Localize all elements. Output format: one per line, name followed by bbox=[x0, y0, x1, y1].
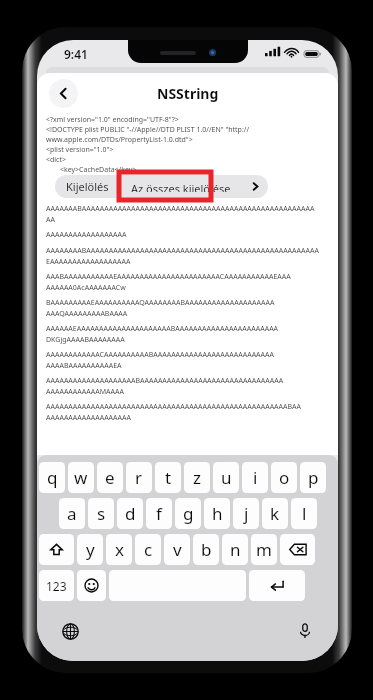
staticText: AAAAAAABAAAAAAAAAAAAAAAAAAAAAAAAAAAAAAAA… bbox=[46, 204, 315, 224]
button[interactable]: Change keyboard bbox=[57, 618, 83, 644]
staticText: Az összes kijelölése bbox=[131, 181, 231, 192]
button[interactable]: Az összes kijelölése bbox=[120, 175, 242, 198]
staticText: e bbox=[105, 466, 115, 489]
staticText: s bbox=[97, 502, 106, 525]
staticText: g bbox=[183, 502, 194, 525]
staticText: <plist version="1.0"> bbox=[46, 145, 114, 155]
staticText: NSString bbox=[157, 84, 219, 103]
button[interactable]: Return bbox=[249, 570, 305, 601]
staticText: p bbox=[308, 466, 319, 489]
staticText: j bbox=[244, 502, 249, 525]
button[interactable]: k bbox=[262, 498, 288, 529]
staticText: w bbox=[74, 466, 88, 489]
button[interactable]: Back bbox=[49, 79, 78, 108]
staticText: y bbox=[86, 538, 95, 561]
staticText: <?xml version="1.0" encoding="UTF-8"?> bbox=[46, 115, 179, 125]
button[interactable]: More bbox=[242, 175, 268, 198]
button[interactable]: Dictation bbox=[292, 618, 318, 644]
staticText: <data> bbox=[60, 175, 83, 185]
button[interactable]: g bbox=[175, 498, 201, 529]
staticText: AAAAAAAAAAAACAAAAAAAAAABAAAAAAAAAAAAAAAA… bbox=[46, 350, 275, 370]
button[interactable]: f bbox=[146, 498, 172, 529]
staticText: l bbox=[302, 502, 307, 525]
staticText: AAAAAAAAAAAAAAAAAA bbox=[46, 230, 127, 240]
button[interactable]: Backspace bbox=[280, 534, 315, 565]
button[interactable]: i bbox=[242, 462, 268, 493]
staticText: AAAAAAAABAAAAAAAAAAAAAAAAAAAAAAAAAAAAAAA… bbox=[46, 246, 319, 266]
staticText: r bbox=[135, 466, 143, 489]
button[interactable]: q bbox=[39, 462, 65, 493]
button[interactable]: w bbox=[68, 462, 94, 493]
button[interactable]: l bbox=[291, 498, 317, 529]
button[interactable]: p bbox=[300, 462, 326, 493]
staticText: h bbox=[212, 502, 223, 525]
staticText: <!DOCTYPE plist PUBLIC "-//Apple//DTD PL… bbox=[46, 125, 250, 135]
button[interactable]: o bbox=[271, 462, 297, 493]
staticText: AAAAAAEAAAAAAAAAAAAAAAAAAAAABAAAAAAAAAAA… bbox=[46, 324, 279, 344]
staticText: AAAAAAAAAAAAAAAAAAAAAAAAAAAAAAAAAAAAAAAA… bbox=[46, 402, 302, 422]
staticText: <key>CacheData</key> bbox=[60, 165, 137, 175]
button[interactable]: t bbox=[155, 462, 181, 493]
button[interactable]: a bbox=[59, 498, 85, 529]
button[interactable]: c bbox=[135, 534, 161, 565]
button[interactable]: Shift bbox=[39, 534, 74, 565]
staticText: BAAAAAAAAAEAAAAAAAAAAQAAAAAAAABAAAAAAAAA… bbox=[46, 298, 275, 318]
staticText: z bbox=[193, 466, 201, 489]
staticText: x bbox=[115, 538, 124, 561]
staticText: n bbox=[230, 538, 241, 561]
button[interactable]: u bbox=[213, 462, 239, 493]
button[interactable]: 123 bbox=[39, 570, 74, 601]
staticText: 9:41 bbox=[64, 46, 88, 62]
staticText: f bbox=[156, 502, 162, 525]
button[interactable]: j bbox=[233, 498, 259, 529]
button[interactable]: y bbox=[77, 534, 103, 565]
staticText: u bbox=[221, 466, 232, 489]
staticText: AAABAAAAAAAAAAAEAAAAAAAAAAAAAAAAAAAAAAAC… bbox=[46, 272, 291, 292]
staticText: i bbox=[253, 466, 258, 489]
button[interactable]: Emoji bbox=[77, 570, 106, 601]
staticText: o bbox=[279, 466, 290, 489]
staticText: v bbox=[173, 538, 182, 561]
staticText: <dict> bbox=[46, 155, 67, 165]
button[interactable]: s bbox=[88, 498, 114, 529]
staticText: q bbox=[47, 466, 58, 489]
button[interactable]: z bbox=[184, 462, 210, 493]
staticText: AAAAAAAAAAAAAAAAAAAABAAAAAAAAAAAAAAAAAAA… bbox=[46, 376, 284, 396]
staticText: 123 bbox=[46, 578, 67, 594]
staticText: t bbox=[165, 466, 172, 489]
button[interactable]: b bbox=[193, 534, 219, 565]
button[interactable]: n bbox=[222, 534, 248, 565]
staticText: d bbox=[125, 502, 136, 525]
staticText: Kijelölés bbox=[66, 179, 109, 194]
button[interactable]: v bbox=[164, 534, 190, 565]
staticText: c bbox=[144, 538, 153, 561]
staticText: b bbox=[201, 538, 212, 561]
button[interactable]: h bbox=[204, 498, 230, 529]
staticText: a bbox=[67, 502, 77, 525]
staticText: m bbox=[256, 538, 272, 561]
button[interactable]: e bbox=[97, 462, 123, 493]
staticText: k bbox=[270, 502, 280, 525]
button[interactable]: r bbox=[126, 462, 152, 493]
button[interactable]: m bbox=[251, 534, 277, 565]
button[interactable]: Kijelölés bbox=[55, 175, 120, 198]
staticText: www.apple.com/DTDs/PropertyList-1.0.dtd"… bbox=[46, 135, 193, 145]
button[interactable]: x bbox=[106, 534, 132, 565]
button[interactable]: d bbox=[117, 498, 143, 529]
